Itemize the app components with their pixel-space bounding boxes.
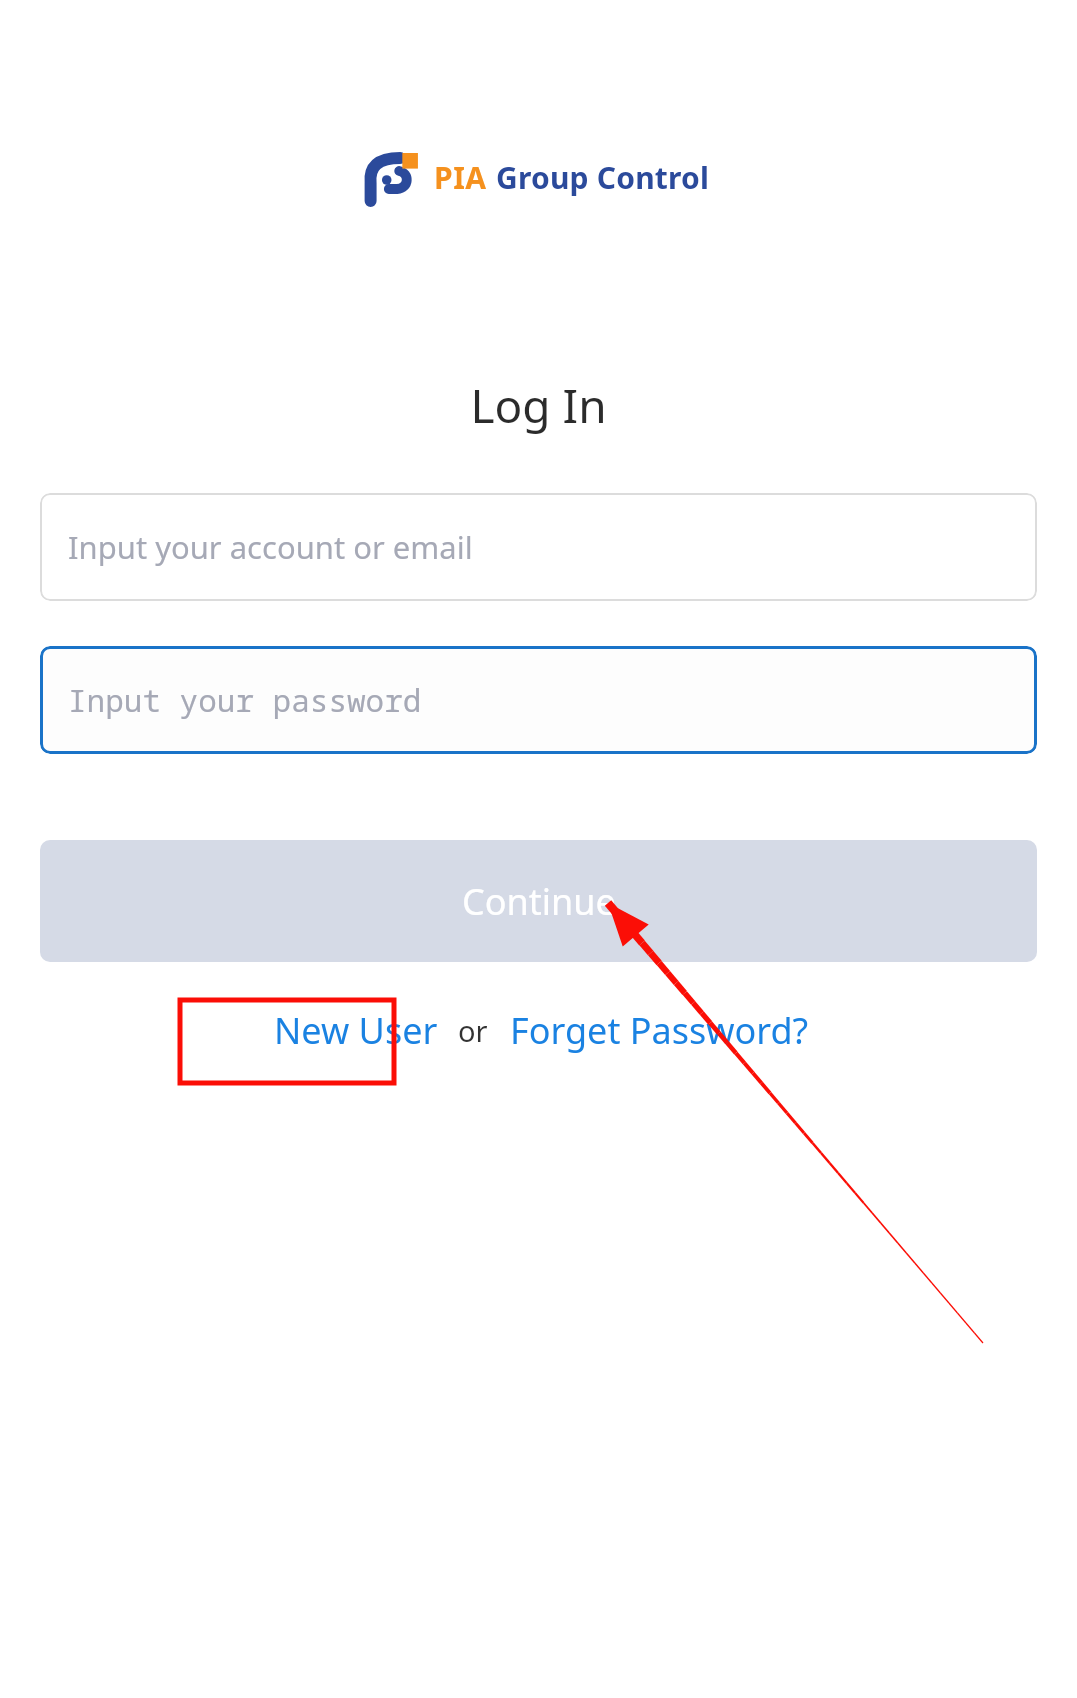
button[interactable]: Forget Password?: [502, 996, 817, 1065]
staticText: Input your password: [68, 679, 422, 721]
staticText: Continue: [462, 877, 616, 926]
staticText: Group Control: [496, 157, 710, 198]
staticText: Input your account or email: [68, 526, 473, 568]
staticText: or: [458, 1011, 488, 1050]
staticText: Log In: [0, 374, 1077, 437]
staticText: Forget Password?: [510, 1006, 809, 1055]
staticText: PIA: [434, 157, 487, 198]
button[interactable]: Input your account or email: [40, 493, 1037, 601]
staticText: New User: [274, 1006, 438, 1055]
button[interactable]: Continue: [40, 840, 1037, 962]
button[interactable]: New User: [260, 996, 452, 1065]
button[interactable]: Input your password: [40, 646, 1037, 754]
